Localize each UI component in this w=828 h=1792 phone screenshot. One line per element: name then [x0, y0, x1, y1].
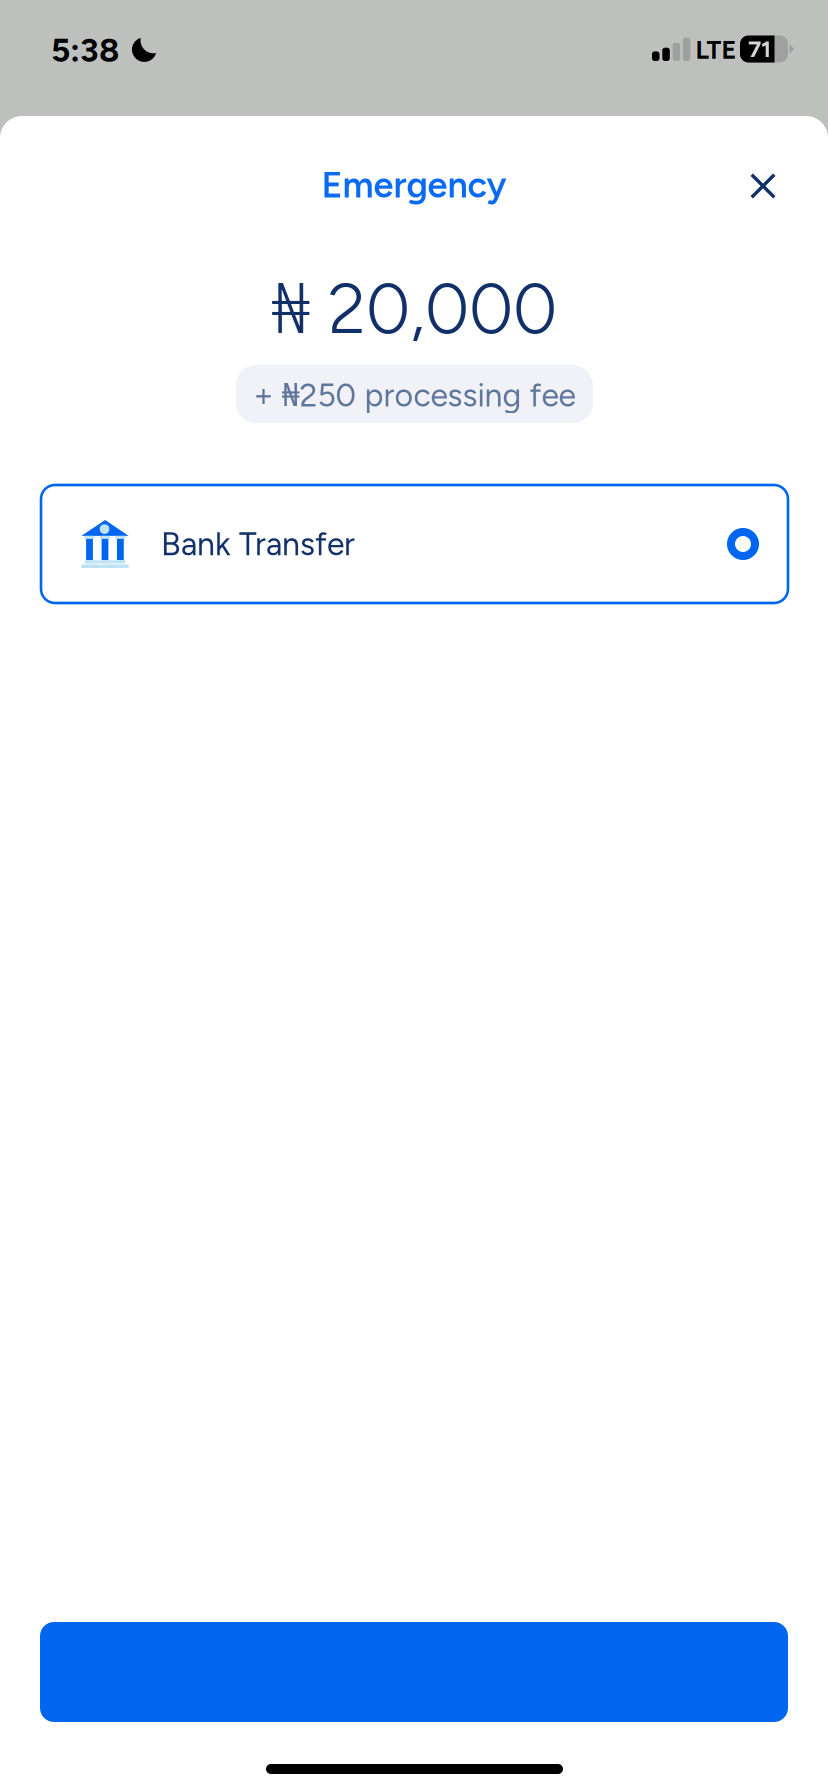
- button[interactable]: Bank Transfer: [41, 485, 788, 603]
- staticText: Emergency: [321, 163, 506, 207]
- staticText: ₦ 20,000: [271, 259, 557, 353]
- staticText: LTE: [695, 35, 736, 65]
- button[interactable]: Continue: [40, 1622, 788, 1722]
- staticText: 71: [748, 35, 771, 63]
- staticText: 5:38: [51, 30, 119, 70]
- staticText: + ₦250 processing fee: [253, 372, 575, 416]
- staticText: Bank Transfer: [161, 525, 355, 563]
- button[interactable]: Close: [728, 151, 798, 221]
